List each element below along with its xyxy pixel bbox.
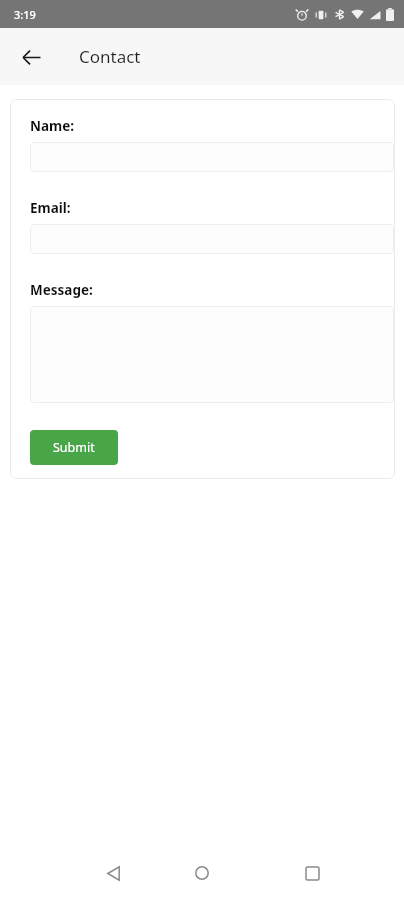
- staticText: Submit: [53, 439, 95, 456]
- staticText: Message:: [30, 281, 93, 299]
- staticText: Email:: [30, 199, 71, 217]
- button[interactable]: Back: [11, 37, 51, 77]
- button[interactable]: [30, 142, 394, 172]
- staticText: Contact: [79, 45, 141, 68]
- staticText: Name:: [30, 117, 75, 135]
- button[interactable]: [30, 224, 394, 254]
- button[interactable]: Home: [178, 849, 226, 897]
- button[interactable]: Recent apps: [288, 849, 336, 897]
- button[interactable]: Back: [89, 849, 137, 897]
- button[interactable]: Submit: [30, 430, 118, 465]
- staticText: 3:19: [14, 7, 36, 22]
